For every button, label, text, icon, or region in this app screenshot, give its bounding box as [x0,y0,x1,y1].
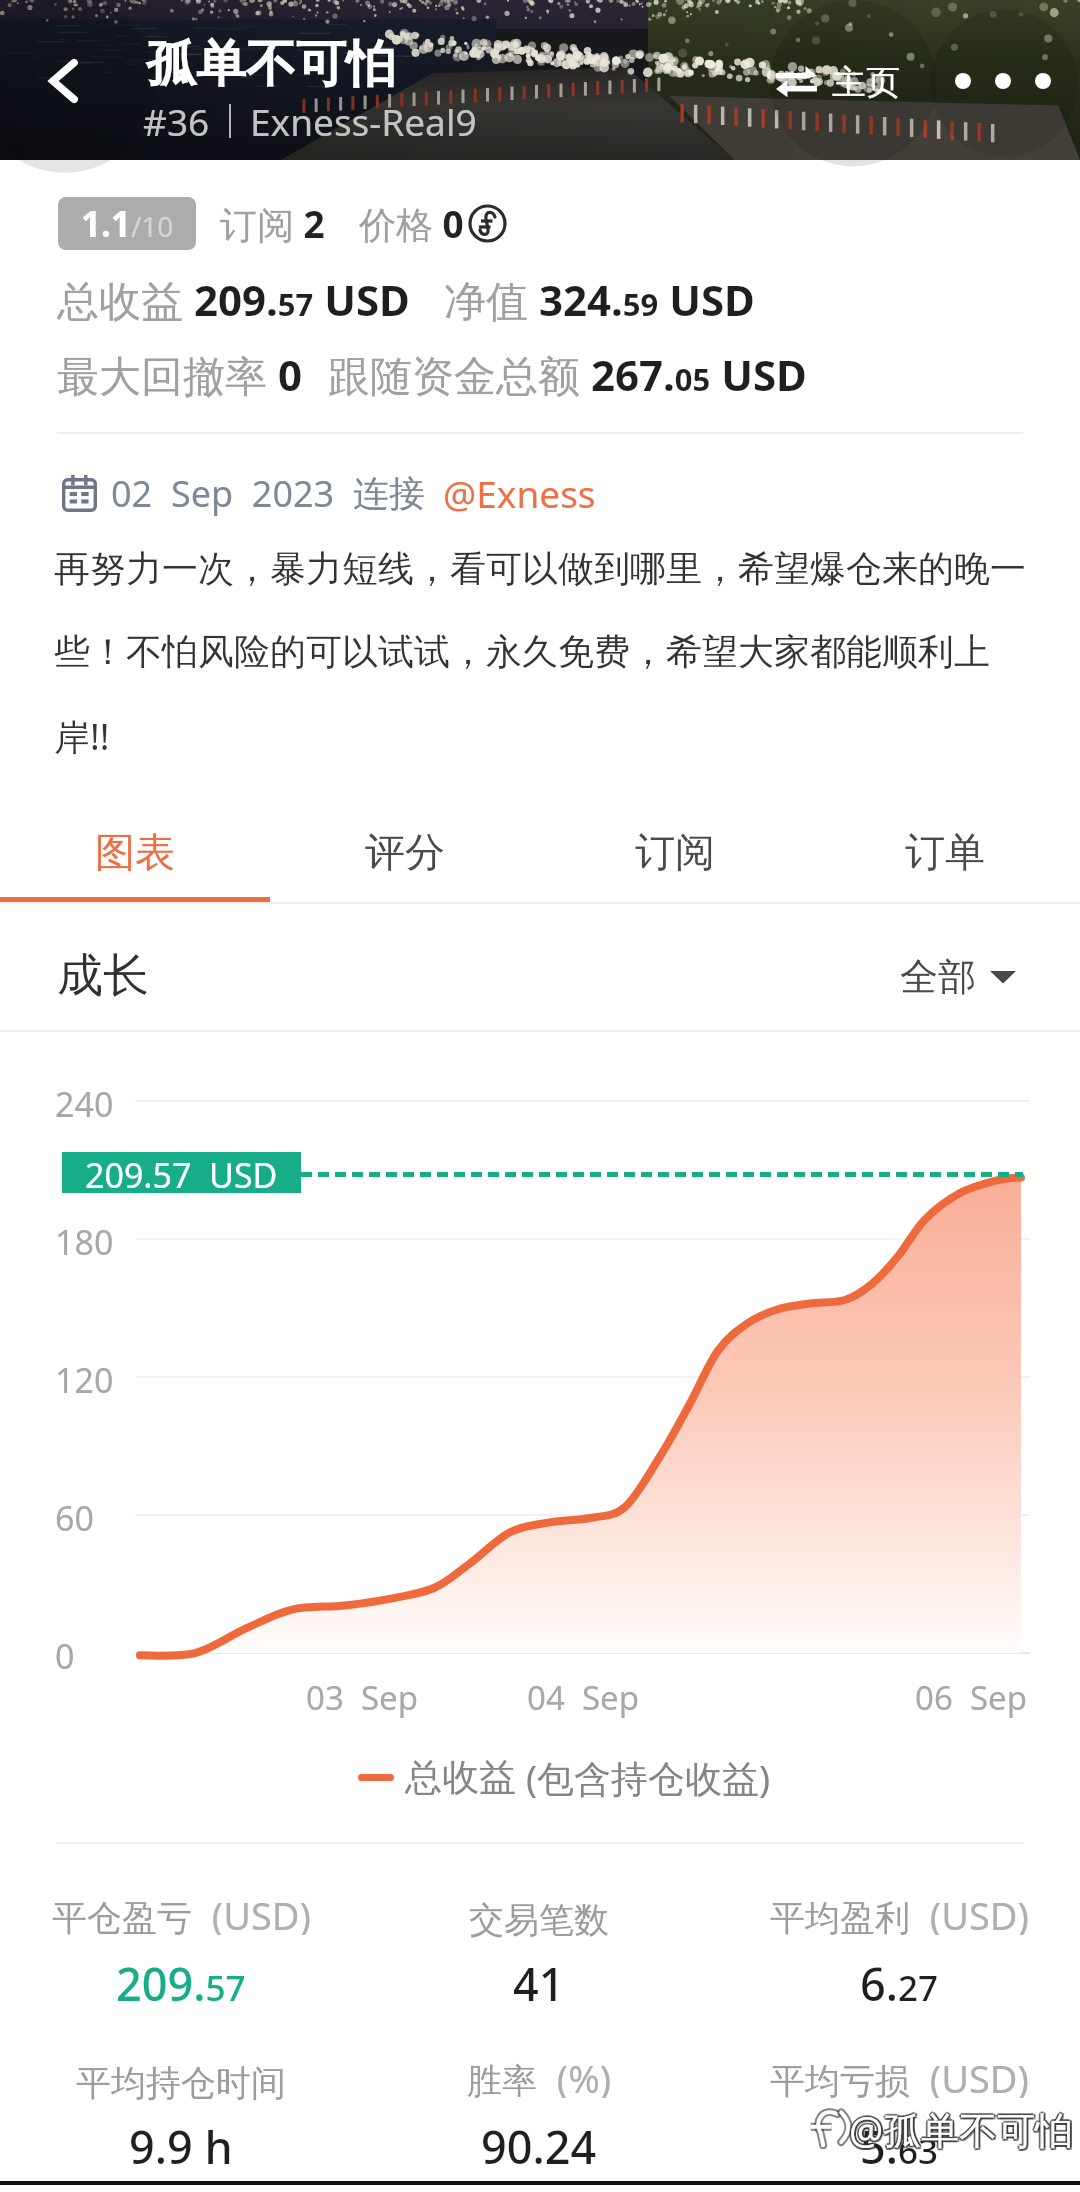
staticText: 209.57 [116,1953,246,2009]
staticText: 平仓盈亏 (USD) [52,1889,311,1935]
staticText: 成长 [57,947,149,1005]
staticText: 06 Sep [915,1675,1027,1720]
button[interactable]: 平均盈利 (USD) [719,1885,1079,2035]
staticText: 跟随资金总额 267.05 USD [328,346,807,403]
staticText: @孤单不可怕 [849,2105,1074,2157]
button[interactable]: 交易笔数 [359,1885,719,2035]
button[interactable]: 全部 [900,953,1016,1001]
button[interactable]: 图表 [0,800,270,904]
button[interactable]: 评分 [270,800,540,904]
staticText: 总收益 [405,1754,516,1801]
staticText: @孤单不可怕 [849,2103,1074,2155]
staticText: @Exness [443,468,596,518]
staticText: @孤单不可怕 [848,2105,1073,2157]
staticText: 胜率 (%) [467,2052,612,2098]
button[interactable]: Back [28,44,102,118]
staticText: @孤单不可怕 [851,2103,1076,2155]
button[interactable]: 订单 [810,800,1080,904]
staticText: 净值 324.59 USD [444,271,755,328]
button[interactable]: 平均亏损 (USD) [719,2048,1079,2192]
staticText: 60 [55,1495,94,1541]
staticText: Exness-Real9 [250,96,477,146]
staticText: 订阅 2 [220,198,325,249]
staticText: @孤单不可怕 [847,2103,1072,2155]
staticText: 主页 [832,61,900,104]
button[interactable]: 胜率 (%) [359,2048,719,2192]
staticText: 209.57 USD [85,1152,278,1193]
button[interactable]: 平仓盈亏 (USD) [1,1885,361,2035]
staticText: 5.63 [860,2116,939,2172]
button[interactable]: More options [955,56,1051,106]
button[interactable]: 主页 [776,58,900,106]
staticText: 平均盈利 (USD) [770,1889,1029,1935]
staticText: 价格 0 [359,198,464,249]
staticText: 1.1/10 [81,200,174,248]
staticText: 图表 [95,827,175,877]
staticText: 平均亏损 (USD) [770,2052,1029,2098]
staticText: (包含持仓收益) [526,1752,771,1803]
staticText: 03 Sep [306,1675,418,1720]
staticText: 全部 [900,953,976,1001]
button[interactable]: 平均持仓时间 [1,2048,361,2192]
staticText: 180 [55,1219,114,1265]
staticText: 订单 [905,827,985,877]
staticText: 04 Sep [527,1675,639,1720]
button[interactable]: 订阅 [540,800,810,904]
staticText: 最大回撤率 0 [57,346,302,403]
staticText: 90.24 [481,2116,597,2172]
staticText: 订阅 [635,827,715,877]
staticText: 平均持仓时间 [76,2061,286,2105]
staticText: 6.27 [860,1953,939,2009]
staticText: #36 [143,96,210,146]
staticText: 评分 [365,827,445,877]
staticText: 0 [55,1633,75,1679]
staticText: @孤单不可怕 [848,2102,1073,2154]
staticText: @孤单不可怕 [849,2101,1074,2153]
staticText: 240 [55,1081,114,1127]
staticText: 再努力一次，暴力短线，看可以做到哪里，希望爆仓来的晚一些！不怕风险的可以试试，永… [54,546,1032,761]
staticText: 41 [513,1953,565,2009]
staticText: 总收益 209.57 USD [57,271,410,328]
staticText: 9.9 h [129,2116,233,2172]
staticText: @孤单不可怕 [851,2105,1076,2157]
staticText: 120 [55,1357,114,1403]
staticText: 连接 [353,471,425,516]
staticText: 02 Sep 2023 [111,469,335,518]
staticText: 孤单不可怕 [146,33,396,96]
staticText: 交易笔数 [469,1898,609,1942]
staticText: @孤单不可怕 [851,2102,1076,2154]
